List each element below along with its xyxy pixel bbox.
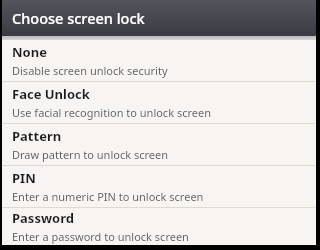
staticText: Enter a numeric PIN to unlock screen: [12, 189, 204, 204]
staticText: Pattern: [12, 127, 62, 145]
staticText: Face Unlock: [12, 85, 90, 103]
button[interactable]: None: [2, 40, 316, 81]
staticText: Choose screen lock: [12, 8, 145, 28]
staticText: Enter a password to unlock screen: [12, 229, 189, 244]
button[interactable]: Password: [2, 208, 316, 245]
button[interactable]: Face Unlock: [2, 82, 316, 123]
staticText: Disable screen unlock security: [12, 63, 168, 78]
staticText: Password: [12, 209, 74, 227]
staticText: None: [12, 43, 47, 61]
staticText: Draw pattern to unlock screen: [12, 147, 168, 162]
staticText: Use facial recognition to unlock screen: [12, 105, 211, 120]
staticText: PIN: [12, 169, 36, 187]
button[interactable]: PIN: [2, 166, 316, 207]
button[interactable]: Pattern: [2, 124, 316, 165]
